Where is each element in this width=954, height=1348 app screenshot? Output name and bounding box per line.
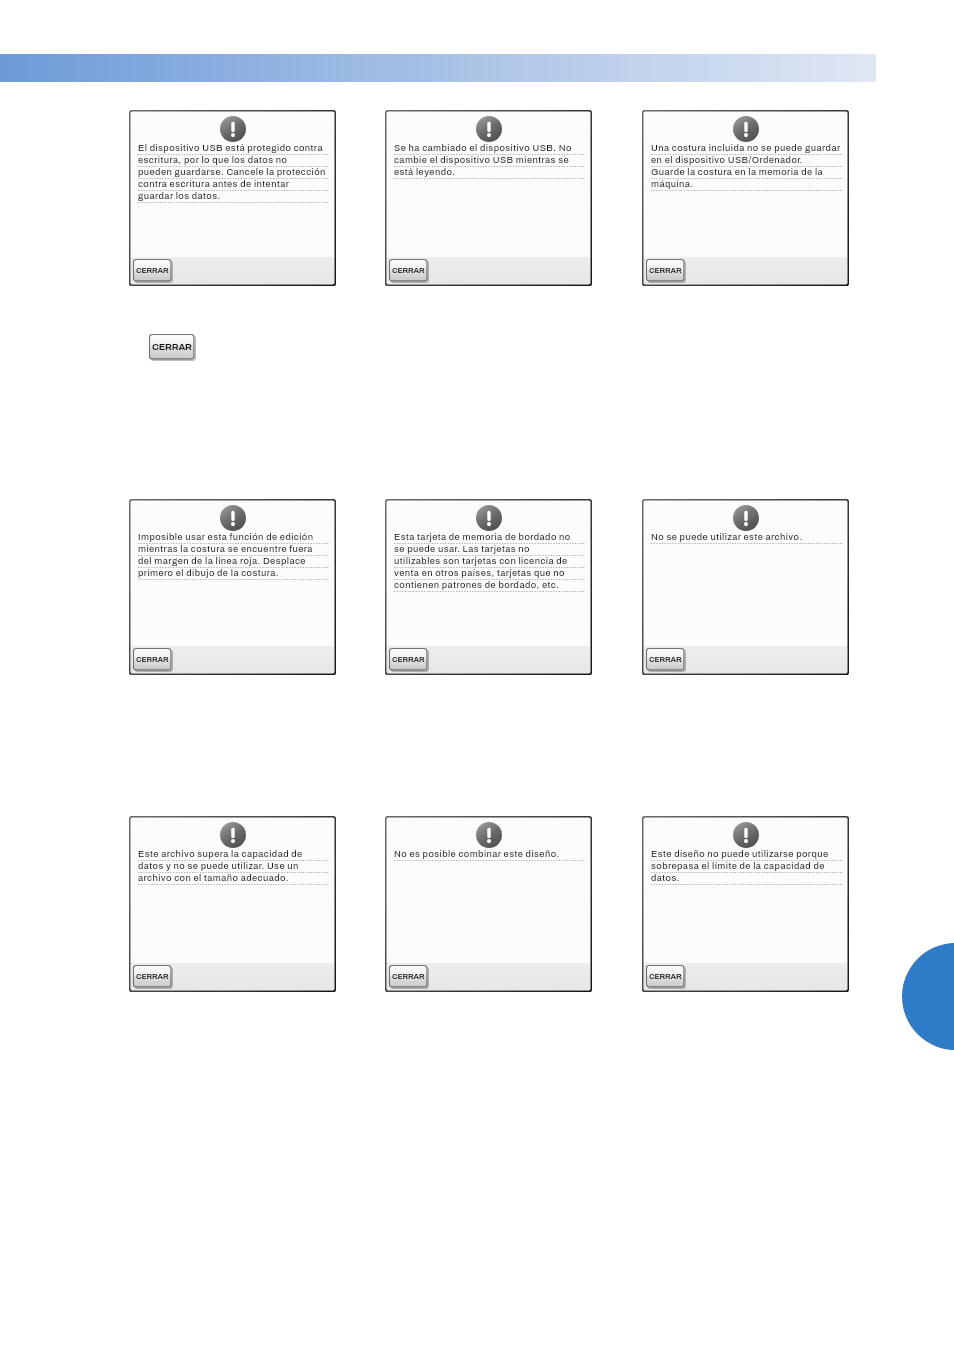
- staticText: CERRAR: [392, 655, 425, 663]
- staticText: CERRAR: [649, 266, 682, 274]
- button[interactable]: CERRAR: [389, 648, 429, 672]
- button[interactable]: CERRAR: [646, 259, 686, 283]
- staticText: datos.: [651, 873, 680, 883]
- button[interactable]: CERRAR: [133, 648, 173, 672]
- staticText: Se ha cambiado el dispositivo USB. No: [394, 143, 572, 153]
- button[interactable]: CERRAR: [646, 648, 686, 672]
- staticText: está leyendo.: [394, 167, 456, 177]
- button[interactable]: Este diseño no puede utilizarse porque s…: [642, 816, 849, 992]
- staticText: pueden guardarse. Cancele la protección: [138, 167, 326, 177]
- staticText: del margen de la línea roja. Desplace: [138, 556, 306, 566]
- staticText: El dispositivo USB está protegido contra: [138, 143, 323, 153]
- button[interactable]: Imposible usar esta función de edición m…: [129, 499, 336, 675]
- button[interactable]: CERRAR: [133, 259, 173, 283]
- staticText: CERRAR: [649, 972, 682, 980]
- staticText: Imposible usar esta función de edición: [138, 532, 314, 542]
- button[interactable]: Se ha cambiado el dispositivo USB. No ca…: [385, 110, 592, 286]
- staticText: CERRAR: [136, 655, 169, 663]
- staticText: contra escritura antes de intentar: [138, 179, 290, 189]
- button[interactable]: CERRAR: [646, 965, 686, 989]
- staticText: escritura, por lo que los datos no: [138, 155, 288, 165]
- staticText: CERRAR: [136, 972, 169, 980]
- staticText: No se puede utilizar este archivo.: [651, 532, 803, 542]
- button[interactable]: CERRAR: [149, 334, 196, 361]
- button[interactable]: CERRAR: [389, 965, 429, 989]
- staticText: mientras la costura se encuentre fuera: [138, 544, 313, 554]
- staticText: CERRAR: [392, 972, 425, 980]
- button[interactable]: No es posible combinar este diseño.: [385, 816, 592, 992]
- staticText: No es posible combinar este diseño.: [394, 849, 560, 859]
- staticText: CERRAR: [152, 342, 192, 352]
- staticText: máquina.: [651, 179, 694, 189]
- staticText: se puede usar. Las tarjetas no: [394, 544, 530, 554]
- staticText: primero el dibujo de la costura.: [138, 568, 279, 578]
- button[interactable]: El dispositivo USB está protegido contra…: [129, 110, 336, 286]
- staticText: contienen patrones de bordado, etc.: [394, 580, 560, 590]
- staticText: archivo con el tamaño adecuado.: [138, 873, 289, 883]
- staticText: cambie el dispositivo USB mientras se: [394, 155, 570, 165]
- staticText: Una costura incluida no se puede guardar: [651, 143, 841, 153]
- staticText: venta en otros países, tarjetas que no: [394, 568, 565, 578]
- staticText: CERRAR: [136, 266, 169, 274]
- staticText: Esta tarjeta de memoria de bordado no: [394, 532, 571, 542]
- staticText: Este archivo supera la capacidad de: [138, 849, 303, 859]
- button[interactable]: CERRAR: [389, 259, 429, 283]
- staticText: datos y no se puede utilizar. Use un: [138, 861, 299, 871]
- staticText: CERRAR: [392, 266, 425, 274]
- staticText: CERRAR: [649, 655, 682, 663]
- button[interactable]: Una costura incluida no se puede guardar…: [642, 110, 849, 286]
- staticText: sobrepasa el límite de la capacidad de: [651, 861, 825, 871]
- staticText: en el dispositivo USB/Ordenador.: [651, 155, 803, 165]
- button[interactable]: No se puede utilizar este archivo.: [642, 499, 849, 675]
- staticText: guardar los datos.: [138, 191, 221, 201]
- button[interactable]: CERRAR: [133, 965, 173, 989]
- button[interactable]: Chapter tab: [899, 943, 954, 1050]
- button[interactable]: Este archivo supera la capacidad de dato…: [129, 816, 336, 992]
- staticText: utilizables son tarjetas con licencia de: [394, 556, 568, 566]
- button[interactable]: Esta tarjeta de memoria de bordado no se…: [385, 499, 592, 675]
- staticText: Guarde la costura en la memoria de la: [651, 167, 824, 177]
- staticText: Este diseño no puede utilizarse porque: [651, 849, 829, 859]
